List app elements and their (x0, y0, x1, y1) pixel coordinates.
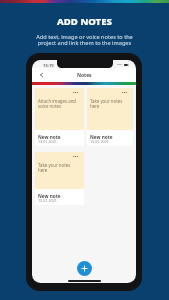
staticText: ADD NOTES (57, 15, 112, 28)
staticText: Attach images and voice notes (38, 98, 76, 109)
staticText: 13.01.2021 (38, 198, 57, 203)
button[interactable]: More options (73, 155, 78, 158)
button[interactable]: Add note (77, 261, 92, 276)
staticText: New note (38, 134, 61, 140)
staticText: Add text, image or voice notes to the pr… (36, 33, 133, 46)
button[interactable]: More options (87, 88, 133, 146)
staticText: Take your notes here (90, 98, 123, 109)
staticText: New note (38, 193, 61, 199)
staticText: 15:19 (43, 63, 54, 69)
button[interactable]: Back (36, 68, 47, 82)
button[interactable]: More options (73, 91, 78, 94)
staticText: Notes (77, 72, 92, 79)
staticText: 13.01.2021 (38, 139, 57, 144)
staticText: Take your notes here (38, 162, 71, 173)
staticText: 13.01.2021 (90, 139, 109, 144)
staticText: New note (90, 134, 113, 140)
button[interactable]: More options (35, 152, 84, 205)
button[interactable]: More options (35, 88, 84, 146)
button[interactable]: More options (122, 91, 127, 94)
